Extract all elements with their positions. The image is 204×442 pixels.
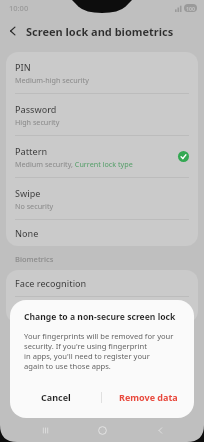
staticText: again to use those apps. xyxy=(24,361,111,371)
staticText: in apps, you'll need to register your fi… xyxy=(24,351,180,361)
button[interactable]: Cancel xyxy=(10,384,101,410)
button[interactable]: Pattern xyxy=(6,136,198,177)
staticText: Change to a non-secure screen lock type? xyxy=(24,311,180,323)
staticText: Face recognition xyxy=(15,277,87,289)
staticText: Fingerprints xyxy=(15,304,68,316)
staticText: Your fingerprints will be removed for yo… xyxy=(24,331,174,341)
staticText: Remove data xyxy=(119,391,178,403)
staticText: Password xyxy=(15,103,57,115)
staticText: Medium security, Current lock type xyxy=(15,159,133,169)
button[interactable]: Fingerprints xyxy=(6,297,198,323)
staticText: Pattern xyxy=(15,145,48,157)
staticText: Screen lock and biometrics xyxy=(26,24,174,39)
staticText: security. If you're using fingerprint au… xyxy=(24,341,180,351)
button[interactable]: Home xyxy=(89,418,115,442)
button[interactable]: Remove data xyxy=(102,384,194,410)
staticText: Medium-high security xyxy=(15,75,89,85)
staticText: Swipe xyxy=(15,187,41,199)
button[interactable]: PIN xyxy=(6,52,198,93)
staticText: None xyxy=(15,227,39,239)
staticText: No security xyxy=(15,201,54,211)
button[interactable]: None xyxy=(6,220,198,246)
staticText: 10:00 xyxy=(9,3,29,13)
button[interactable]: Swipe xyxy=(6,178,198,219)
staticText: PIN xyxy=(15,61,31,73)
button[interactable]: Back xyxy=(0,16,26,46)
button[interactable]: Recent apps xyxy=(32,418,58,442)
staticText: 100 xyxy=(186,5,195,12)
button[interactable]: Password xyxy=(6,94,198,135)
button[interactable]: Face recognition xyxy=(6,270,198,296)
staticText: High security xyxy=(15,117,60,127)
staticText: Biometrics xyxy=(15,254,54,264)
staticText: Cancel xyxy=(41,391,71,403)
